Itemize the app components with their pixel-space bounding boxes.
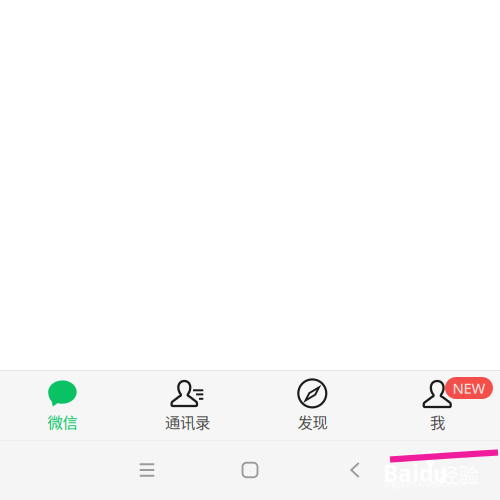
button[interactable]: 发现: [250, 371, 375, 440]
staticText: 经验: [439, 460, 479, 489]
staticText: 微信: [47, 410, 77, 433]
staticText: Baidu: [383, 458, 448, 488]
staticText: jingyan.baidu.com: [384, 477, 466, 489]
button[interactable]: 微信: [0, 371, 125, 440]
button[interactable]: Back: [325, 447, 385, 493]
staticText: 通讯录: [165, 410, 210, 433]
staticText: 我: [430, 410, 445, 433]
button[interactable]: NEW: [375, 371, 500, 440]
button[interactable]: Recent apps: [117, 447, 177, 493]
staticText: 发现: [297, 410, 327, 433]
staticText: NEW: [452, 378, 485, 398]
button[interactable]: Home: [220, 447, 280, 493]
button[interactable]: 通讯录: [125, 371, 250, 440]
